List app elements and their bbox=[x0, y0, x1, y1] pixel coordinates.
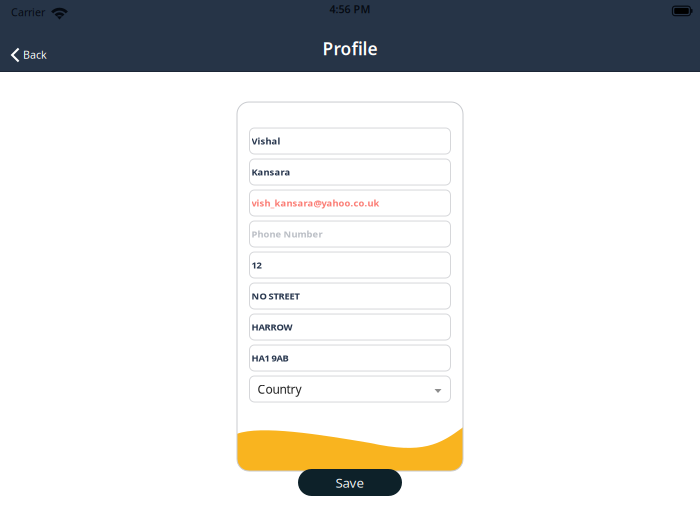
staticText: NO STREET bbox=[251, 290, 299, 302]
button[interactable]: Phone Number bbox=[249, 221, 450, 247]
staticText: Phone Number bbox=[251, 228, 322, 240]
staticText: HARROW bbox=[251, 321, 292, 333]
button[interactable]: Vishal bbox=[249, 128, 450, 154]
staticText: Back bbox=[23, 47, 47, 62]
staticText: 4:56 PM bbox=[329, 2, 370, 16]
staticText: Save bbox=[335, 474, 364, 491]
staticText: Carrier bbox=[11, 5, 45, 19]
button[interactable]: HA1 9AB bbox=[249, 345, 450, 371]
staticText: Profile bbox=[322, 37, 377, 60]
button[interactable]: vish_kansara@yahoo.co.uk bbox=[249, 190, 450, 216]
staticText: Kansara bbox=[251, 166, 290, 178]
button[interactable]: NO STREET bbox=[249, 283, 450, 309]
staticText: vish_kansara@yahoo.co.uk bbox=[251, 197, 379, 209]
staticText: Country bbox=[257, 381, 301, 397]
button[interactable]: Save bbox=[298, 469, 402, 496]
button[interactable]: Kansara bbox=[249, 159, 450, 185]
button[interactable]: 12 bbox=[249, 252, 450, 278]
staticText: 12 bbox=[251, 259, 261, 271]
staticText: Vishal bbox=[251, 135, 280, 147]
button[interactable]: HARROW bbox=[249, 314, 450, 340]
button[interactable]: Country bbox=[249, 376, 450, 402]
button[interactable]: Back bbox=[0, 29, 57, 67]
staticText: HA1 9AB bbox=[251, 352, 288, 364]
